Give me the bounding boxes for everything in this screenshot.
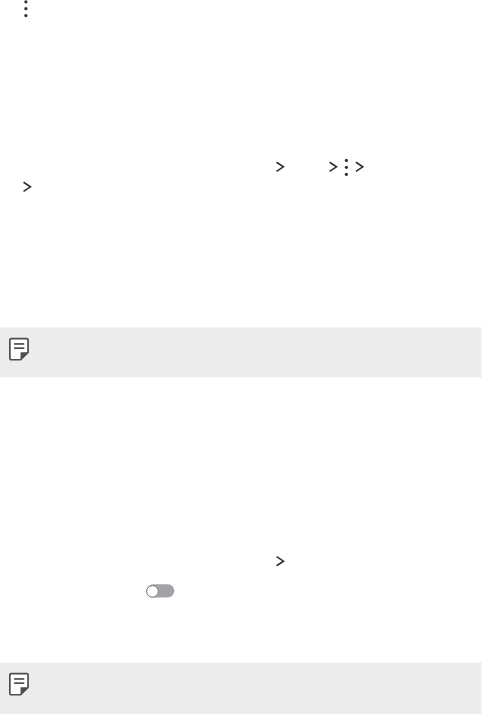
button[interactable]: Note	[0, 662, 482, 714]
button[interactable]: Next	[272, 552, 288, 570]
button[interactable]: More options	[341, 156, 352, 178]
button[interactable]: Toggle setting off	[145, 583, 176, 599]
button[interactable]: More options	[19, 0, 33, 20]
button[interactable]: Next	[352, 158, 368, 176]
button[interactable]: Next	[19, 178, 36, 196]
button[interactable]: Note	[0, 327, 482, 378]
button[interactable]: Next	[325, 158, 341, 176]
button[interactable]: Next	[272, 158, 288, 176]
